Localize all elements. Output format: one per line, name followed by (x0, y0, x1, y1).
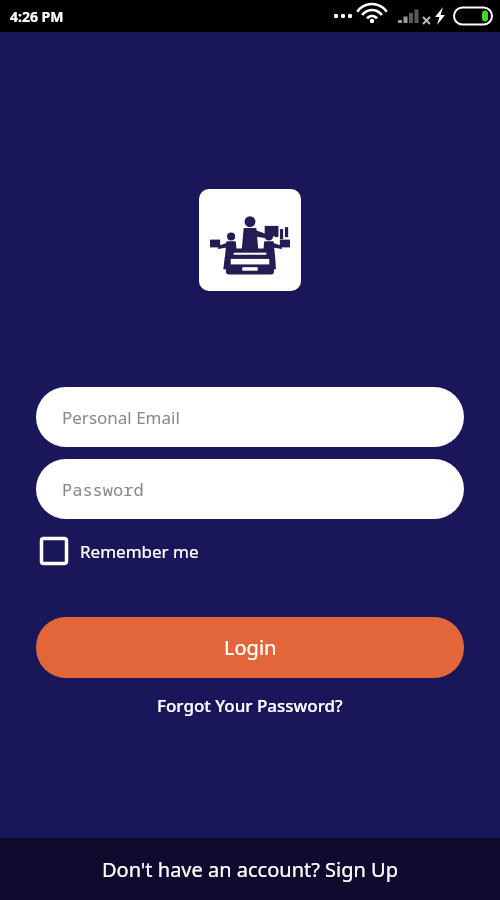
button[interactable]: Personal Email (36, 387, 464, 447)
staticText: Login (224, 634, 277, 661)
button[interactable]: Activist App logo (199, 189, 301, 291)
button[interactable]: Forgot Your Password? (149, 690, 351, 721)
staticText: Password (62, 478, 144, 501)
button[interactable]: Password (36, 459, 464, 519)
button[interactable]: Don't have an account? Sign Up (0, 838, 500, 900)
staticText: Forgot Your Password? (157, 694, 343, 717)
button[interactable]: Remember me (36, 533, 203, 569)
button[interactable]: Login (36, 617, 464, 678)
staticText: 4:26 PM (10, 7, 64, 26)
staticText: Personal Email (62, 406, 180, 429)
staticText: Don't have an account? Sign Up (102, 856, 399, 883)
staticText: Remember me (80, 540, 199, 563)
